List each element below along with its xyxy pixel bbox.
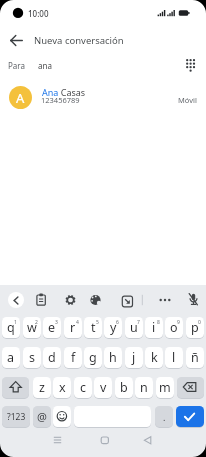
button[interactable]: u bbox=[125, 317, 143, 338]
staticText: a bbox=[7, 349, 15, 366]
button[interactable] bbox=[96, 432, 113, 449]
staticText: n bbox=[140, 379, 148, 396]
button[interactable]: A bbox=[0, 83, 206, 112]
staticText: s bbox=[29, 349, 35, 366]
staticText: 6 bbox=[116, 319, 119, 326]
button[interactable] bbox=[53, 406, 71, 427]
button[interactable]: s bbox=[23, 347, 41, 368]
button[interactable]: . bbox=[155, 406, 173, 427]
staticText: b bbox=[120, 379, 128, 396]
button[interactable]: a bbox=[2, 347, 20, 368]
button[interactable] bbox=[139, 432, 156, 449]
staticText: r bbox=[70, 319, 76, 336]
staticText: v bbox=[100, 379, 107, 396]
button[interactable] bbox=[33, 292, 49, 308]
button[interactable]: h bbox=[104, 347, 122, 368]
staticText: ñ bbox=[191, 349, 199, 366]
button[interactable]: e bbox=[43, 317, 61, 338]
staticText: e bbox=[48, 319, 56, 336]
staticText: 1 bbox=[14, 319, 17, 326]
button[interactable] bbox=[185, 292, 201, 308]
button[interactable]: p bbox=[186, 317, 204, 338]
staticText: p bbox=[191, 319, 199, 336]
button[interactable]: b bbox=[115, 377, 133, 398]
staticText: ?123 bbox=[7, 411, 26, 423]
staticText: Para bbox=[8, 60, 25, 71]
button[interactable]: r bbox=[64, 317, 82, 338]
staticText: i bbox=[152, 319, 156, 336]
button[interactable]: ñ bbox=[186, 347, 204, 368]
button[interactable] bbox=[8, 292, 24, 308]
staticText: m bbox=[159, 379, 171, 396]
staticText: 7 bbox=[137, 319, 140, 326]
button[interactable] bbox=[49, 432, 66, 449]
staticText: . bbox=[163, 411, 166, 423]
staticText: c bbox=[80, 379, 87, 396]
staticText: 0 bbox=[198, 319, 201, 326]
button[interactable]: n bbox=[135, 377, 153, 398]
staticText: Nueva conversación bbox=[34, 34, 124, 47]
button[interactable]: d bbox=[43, 347, 61, 368]
staticText: q bbox=[7, 319, 15, 336]
staticText: f bbox=[71, 349, 76, 366]
button[interactable]: t bbox=[84, 317, 102, 338]
staticText: 9 bbox=[177, 319, 180, 326]
button[interactable] bbox=[119, 292, 135, 308]
button[interactable]: k bbox=[145, 347, 163, 368]
button[interactable]: y bbox=[104, 317, 122, 338]
staticText: y bbox=[110, 319, 117, 336]
staticText: @ bbox=[37, 409, 47, 424]
staticText: k bbox=[151, 349, 158, 366]
staticText: 8 bbox=[157, 319, 160, 326]
staticText: w bbox=[27, 319, 37, 336]
staticText: u bbox=[130, 319, 138, 336]
staticText: 123456789 bbox=[41, 95, 80, 105]
button[interactable]: g bbox=[84, 347, 102, 368]
button[interactable]: v bbox=[94, 377, 112, 398]
button[interactable] bbox=[181, 56, 200, 75]
button[interactable]: f bbox=[64, 347, 82, 368]
staticText: g bbox=[89, 349, 97, 366]
staticText: 4 bbox=[76, 319, 79, 326]
staticText: x bbox=[59, 379, 66, 396]
button[interactable]: @ bbox=[33, 406, 51, 427]
button[interactable] bbox=[2, 377, 29, 398]
staticText: h bbox=[109, 349, 117, 366]
staticText: l bbox=[172, 349, 176, 366]
button[interactable] bbox=[157, 292, 173, 308]
staticText: 5 bbox=[96, 319, 99, 326]
staticText: 10:00 bbox=[28, 8, 49, 19]
button[interactable]: x bbox=[53, 377, 71, 398]
staticText: 2 bbox=[35, 319, 38, 326]
button[interactable] bbox=[62, 292, 78, 308]
button[interactable]: q bbox=[2, 317, 20, 338]
staticText: z bbox=[39, 379, 45, 396]
staticText: j bbox=[132, 349, 136, 366]
button[interactable]: i bbox=[145, 317, 163, 338]
staticText: 3 bbox=[55, 319, 58, 326]
staticText: t bbox=[91, 319, 96, 336]
staticText: A bbox=[16, 89, 25, 107]
staticText: o bbox=[170, 319, 178, 336]
button[interactable]: l bbox=[165, 347, 183, 368]
staticText: Móvil bbox=[178, 95, 197, 105]
button[interactable] bbox=[176, 406, 204, 427]
button[interactable]: ?123 bbox=[2, 406, 30, 427]
button[interactable]: c bbox=[74, 377, 92, 398]
button[interactable] bbox=[87, 292, 103, 308]
button[interactable] bbox=[7, 31, 26, 50]
staticText: Ana Casas bbox=[42, 86, 86, 98]
button[interactable]: m bbox=[156, 377, 174, 398]
staticText: d bbox=[48, 349, 56, 366]
button[interactable]: w bbox=[23, 317, 41, 338]
button[interactable]: j bbox=[125, 347, 143, 368]
button[interactable] bbox=[177, 377, 204, 398]
staticText: ana bbox=[38, 60, 52, 71]
button[interactable]: o bbox=[165, 317, 183, 338]
button[interactable]: z bbox=[33, 377, 51, 398]
